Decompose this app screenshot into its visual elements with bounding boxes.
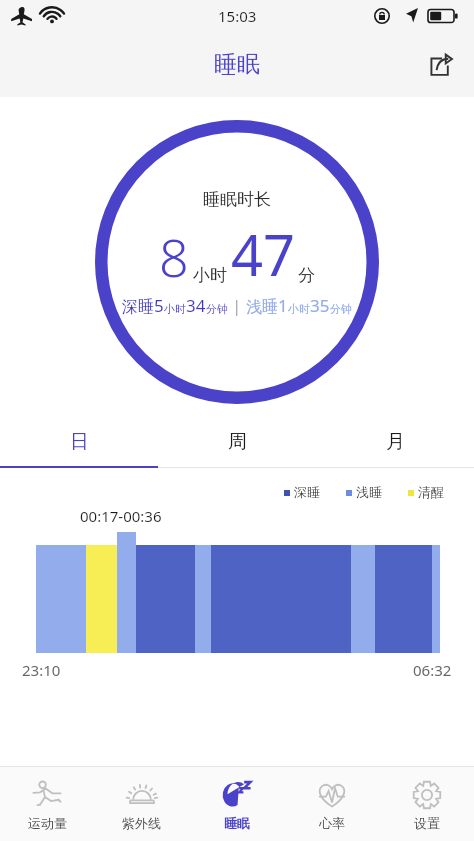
staticText: 06:32 <box>413 660 452 680</box>
staticText: 分 <box>298 265 315 286</box>
staticText: 小时 <box>288 302 310 316</box>
button[interactable]: 日 <box>0 418 158 466</box>
staticText: 睡眠时长 <box>203 189 271 210</box>
staticText: 分钟 <box>206 302 228 316</box>
staticText: 运动量 <box>28 815 67 831</box>
staticText: 34 <box>186 294 206 317</box>
staticText: 47 <box>231 216 296 292</box>
button[interactable]: Share <box>416 41 464 89</box>
staticText: 清醒 <box>418 484 444 500</box>
button[interactable]: 紫外线 <box>94 767 189 841</box>
staticText: 浅睡 <box>356 484 382 500</box>
staticText: 深睡 <box>294 484 320 500</box>
staticText: 1 <box>278 294 288 317</box>
staticText: 日 <box>70 430 89 454</box>
button[interactable]: 运动量 <box>0 767 94 841</box>
staticText: 月 <box>386 430 405 454</box>
staticText: 35 <box>310 294 330 317</box>
staticText: 周 <box>228 430 247 454</box>
button[interactable]: 设置 <box>379 767 474 841</box>
staticText: 设置 <box>414 815 440 831</box>
staticText: 睡眠 <box>224 815 250 831</box>
staticText: 浅睡 <box>246 297 278 317</box>
staticText: 睡眠 <box>214 50 260 79</box>
staticText: 小时 <box>193 265 227 286</box>
button[interactable]: 周 <box>158 418 316 466</box>
staticText: | <box>228 295 246 317</box>
staticText: 紫外线 <box>122 815 161 831</box>
staticText: 5 <box>154 294 164 317</box>
staticText: 15:03 <box>218 6 257 26</box>
button[interactable]: 睡眠 <box>189 767 284 841</box>
staticText: 00:17-00:36 <box>80 506 162 526</box>
staticText: 深睡 <box>122 297 154 317</box>
button[interactable]: 月 <box>316 418 474 466</box>
button[interactable]: 心率 <box>284 767 379 841</box>
staticText: 小时 <box>164 302 186 316</box>
staticText: 心率 <box>319 815 345 831</box>
staticText: 23:10 <box>22 660 61 680</box>
staticText: 8 <box>159 221 189 292</box>
staticText: 分钟 <box>330 302 352 316</box>
